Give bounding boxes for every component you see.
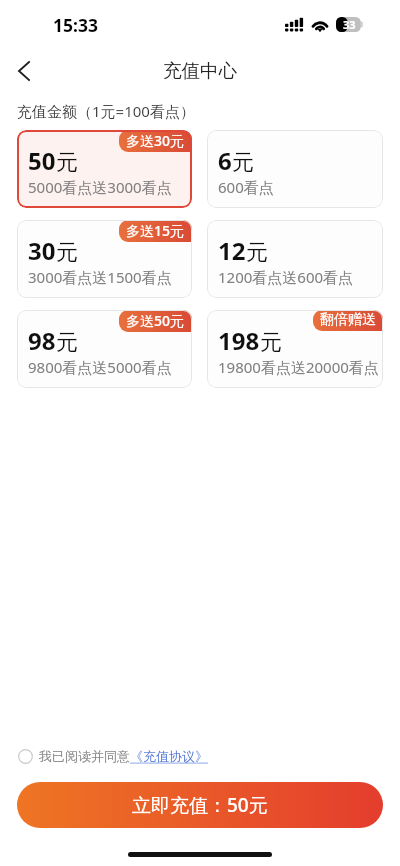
- button[interactable]: 30: [17, 220, 192, 298]
- staticText: 元: [260, 329, 282, 357]
- staticText: 33: [343, 17, 356, 32]
- button[interactable]: 立即充值：50元: [17, 782, 383, 828]
- button[interactable]: Back: [0, 44, 46, 90]
- staticText: 元: [232, 149, 254, 177]
- staticText: 多送30元: [126, 131, 185, 150]
- staticText: 5000看点送3000看点: [28, 177, 172, 197]
- staticText: 多送50元: [126, 311, 185, 330]
- staticText: 翻倍赠送: [320, 311, 376, 329]
- staticText: 19800看点送20000看点: [218, 357, 379, 377]
- button[interactable]: 我已阅读并同意: [18, 748, 400, 764]
- staticText: 1200看点送600看点: [218, 267, 354, 287]
- staticText: 3000看点送1500看点: [28, 267, 172, 287]
- button[interactable]: 198: [207, 310, 383, 388]
- staticText: 50: [28, 144, 56, 177]
- staticText: 15:33: [53, 13, 98, 37]
- button[interactable]: 98: [17, 310, 192, 388]
- staticText: 元: [246, 239, 268, 267]
- staticText: 我已阅读并同意: [39, 748, 130, 764]
- staticText: 充值中心: [163, 59, 237, 82]
- staticText: 充值金额（1元=100看点）: [17, 101, 195, 121]
- staticText: 6: [218, 144, 232, 177]
- staticText: 元: [56, 149, 78, 177]
- staticText: 12: [218, 234, 246, 267]
- staticText: 9800看点送5000看点: [28, 357, 172, 377]
- button[interactable]: 12: [207, 220, 383, 298]
- staticText: 元: [56, 329, 78, 357]
- staticText: 30: [28, 234, 56, 267]
- button[interactable]: 6: [207, 130, 383, 208]
- staticText: 600看点: [218, 177, 274, 197]
- staticText: 立即充值：50元: [132, 792, 268, 818]
- staticText: 98: [28, 324, 56, 357]
- staticText: 198: [218, 324, 260, 357]
- staticText: 元: [56, 239, 78, 267]
- staticText: 多送15元: [126, 221, 185, 240]
- staticText: 《充值协议》: [130, 748, 208, 764]
- button[interactable]: 50: [17, 130, 192, 208]
